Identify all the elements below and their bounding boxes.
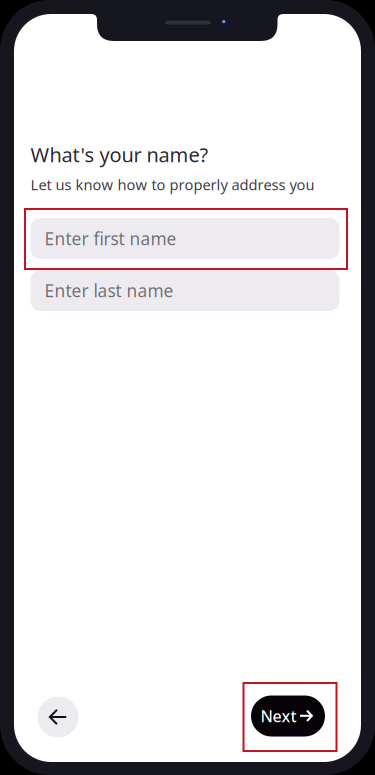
button[interactable]: Enter last name <box>30 270 339 311</box>
button[interactable]: Enter first name <box>30 218 339 259</box>
staticText: Next <box>260 705 296 727</box>
staticText: What's your name? <box>30 141 208 168</box>
button[interactable]: Back <box>37 696 78 737</box>
staticText: Enter last name <box>44 279 173 302</box>
button[interactable]: Next <box>251 695 325 736</box>
staticText: Let us know how to properly address you <box>30 175 314 194</box>
staticText: Enter first name <box>44 227 176 250</box>
